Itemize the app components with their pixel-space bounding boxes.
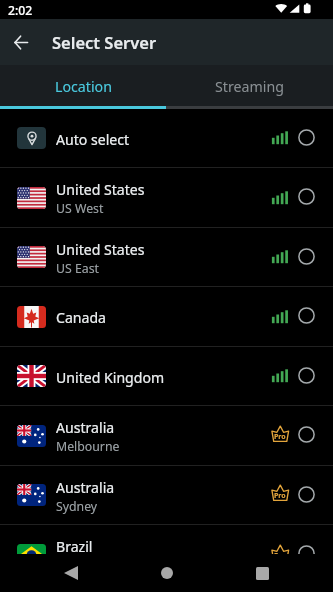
- staticText: Pro: [274, 551, 286, 561]
- staticText: United States: [56, 180, 145, 199]
- button[interactable]: Back: [0, 19, 43, 65]
- button[interactable]: United States: [0, 168, 333, 227]
- button[interactable]: Home: [143, 554, 191, 592]
- staticText: Auto select: [56, 130, 130, 149]
- staticText: 2:02: [8, 2, 33, 19]
- staticText: Sydney: [56, 498, 98, 515]
- staticText: Pro: [274, 491, 286, 501]
- button[interactable]: Location: [0, 65, 166, 109]
- staticText: United Kingdom: [56, 368, 165, 387]
- staticText: United States: [56, 240, 145, 259]
- staticText: Select Server: [52, 31, 157, 53]
- button[interactable]: United States: [0, 228, 333, 286]
- staticText: Pro: [274, 432, 286, 442]
- button[interactable]: United Kingdom: [0, 347, 333, 405]
- button[interactable]: Back: [47, 554, 95, 592]
- staticText: Brazil: [56, 537, 93, 556]
- button[interactable]: Auto select: [0, 109, 333, 167]
- staticText: Canada: [56, 308, 107, 327]
- staticText: Sao Paulo: [56, 557, 113, 574]
- button[interactable]: Australia: [0, 406, 333, 465]
- button[interactable]: Canada: [0, 287, 333, 346]
- staticText: US East: [56, 260, 100, 277]
- button[interactable]: Streaming: [166, 65, 333, 109]
- button[interactable]: Recents: [238, 554, 286, 592]
- staticText: Melbourne: [56, 438, 120, 455]
- staticText: Australia: [56, 418, 115, 437]
- staticText: US West: [56, 200, 104, 217]
- button[interactable]: Australia: [0, 466, 333, 524]
- button[interactable]: Brazil: [0, 525, 333, 584]
- staticText: Australia: [56, 478, 115, 497]
- staticText: Streaming: [215, 77, 284, 96]
- staticText: Location: [55, 77, 112, 96]
